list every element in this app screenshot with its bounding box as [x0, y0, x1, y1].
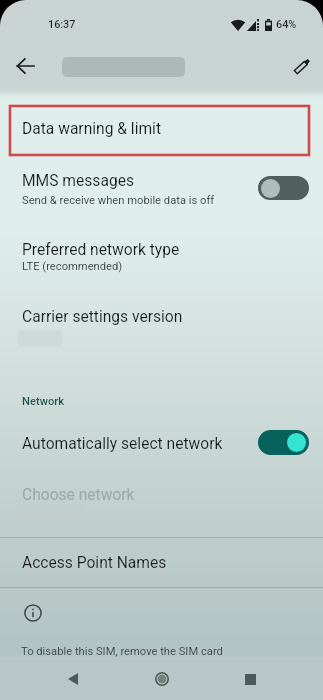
button[interactable]: Home	[145, 662, 179, 696]
button[interactable]: Automatically select network	[0, 414, 323, 468]
staticText: MMS messages	[22, 172, 134, 190]
button[interactable]: Back	[56, 662, 90, 696]
staticText: Carrier settings version	[22, 308, 183, 326]
staticText: Choose network	[22, 486, 135, 504]
staticText: Access Point Names	[22, 554, 167, 572]
button[interactable]: Access Point Names	[0, 538, 323, 587]
staticText: Network	[22, 395, 65, 408]
button[interactable]: Automatically select network	[258, 430, 309, 455]
button[interactable]: Preferred network type	[0, 224, 323, 286]
button[interactable]: Recent apps	[233, 662, 267, 696]
button[interactable]: Edit	[287, 46, 321, 80]
staticText: 64%	[276, 18, 297, 31]
staticText: To disable this SIM, remove the SIM card	[21, 645, 223, 658]
staticText: 16:37	[48, 18, 76, 31]
staticText: Data warning & limit	[22, 120, 162, 138]
staticText: Preferred network type	[22, 241, 180, 259]
staticText: Send & receive when mobile data is off	[22, 194, 215, 207]
staticText: Automatically select network	[22, 435, 223, 453]
staticText: LTE (recommended)	[22, 260, 123, 273]
button[interactable]: Data warning & limit	[0, 96, 323, 156]
button[interactable]: Navigate up	[8, 49, 42, 83]
button[interactable]: MMS messages	[0, 156, 323, 218]
button[interactable]: MMS messages	[258, 176, 309, 200]
button[interactable]: Carrier settings version	[0, 292, 323, 354]
